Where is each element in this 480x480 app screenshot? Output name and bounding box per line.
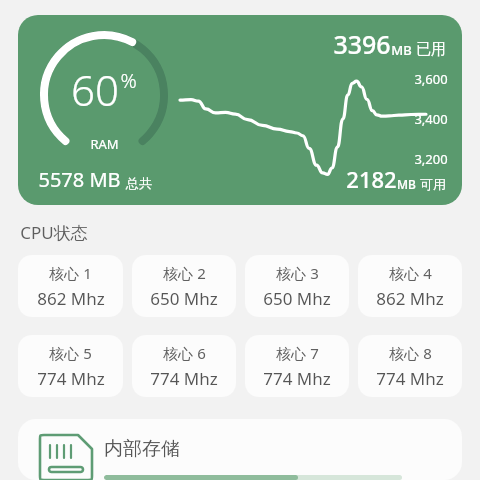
staticText: 核心 2 [163,263,206,283]
staticText: 862 Mhz [37,287,105,310]
staticText: 核心 4 [389,263,432,283]
staticText: MB [397,176,416,192]
staticText: MB [391,41,412,59]
staticText: 核心 7 [276,343,319,363]
button[interactable]: 60 [18,15,462,205]
staticText: 核心 8 [389,343,432,363]
staticText: 内部存储 [104,437,180,461]
other: Internal storage [40,435,92,480]
staticText: 核心 1 [49,263,92,283]
staticText: 3,600 [414,70,448,88]
staticText: 总共 [126,175,152,191]
staticText: 3,200 [414,150,448,168]
button[interactable]: 核心 6 [132,335,236,397]
button[interactable]: 核心 8 [358,335,462,397]
staticText: 已用 [416,40,446,59]
staticText: 650 Mhz [263,287,331,310]
staticText: 3396 [333,27,391,61]
staticText: 774 Mhz [37,367,105,390]
staticText: 可用 [420,176,446,192]
staticText: RAM [90,135,119,153]
staticText: 3,400 [414,110,448,128]
button[interactable]: 核心 1 [18,255,123,317]
button[interactable]: 核心 3 [245,255,349,317]
staticText: 774 Mhz [150,367,218,390]
staticText: 650 Mhz [150,287,218,310]
staticText: 核心 6 [163,343,206,363]
button[interactable]: 核心 2 [132,255,236,317]
button[interactable]: 核心 5 [18,335,123,397]
staticText: 核心 3 [276,263,319,283]
staticText: 2182 [346,164,397,194]
staticText: % [120,67,137,94]
staticText: 774 Mhz [263,367,331,390]
button[interactable]: Internal storage [18,419,462,480]
staticText: 核心 5 [49,343,92,363]
staticText: 862 Mhz [376,287,444,310]
staticText: 774 Mhz [376,367,444,390]
button[interactable]: 核心 7 [245,335,349,397]
staticText: 60 [71,61,119,118]
staticText: CPU状态 [20,221,88,244]
staticText: 5578 MB [38,166,121,193]
button[interactable]: 核心 4 [358,255,462,317]
